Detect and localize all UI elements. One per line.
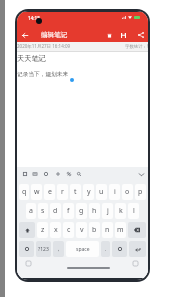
button[interactable]: Share (135, 29, 147, 41)
staticText: g (79, 206, 84, 216)
button[interactable]: b (89, 222, 100, 238)
button[interactable]: q (19, 184, 29, 200)
button[interactable]: e (44, 184, 55, 200)
button[interactable]: g (76, 203, 87, 219)
staticText: 天天笔记 (17, 54, 46, 63)
staticText: 2020年11月27日 16:14:09 (17, 43, 71, 49)
staticText: 字数统计：9 (125, 43, 148, 49)
button[interactable]: v (76, 222, 87, 238)
button[interactable]: y (83, 184, 94, 200)
button[interactable]: Save (117, 29, 129, 41)
staticText: q (22, 187, 27, 197)
button[interactable]: m (115, 222, 126, 238)
staticText: u (99, 187, 104, 197)
staticText: 记录当下，规划未来 (17, 71, 69, 78)
staticText: o (125, 187, 130, 197)
button[interactable]: Tool 2 (31, 170, 39, 178)
staticText: k (119, 206, 123, 216)
staticText: b (92, 225, 97, 235)
staticText: i (114, 187, 116, 197)
staticText: x (54, 225, 58, 235)
button[interactable]: h (89, 203, 100, 219)
staticText: f (67, 206, 70, 216)
staticText: c (67, 225, 71, 235)
staticText: ?123 (38, 246, 49, 253)
button[interactable]: w (31, 184, 42, 200)
button[interactable]: Backspace (128, 222, 146, 238)
button[interactable]: l (128, 203, 139, 219)
button[interactable]: f (63, 203, 74, 219)
button[interactable]: Enter (129, 241, 146, 257)
staticText: e (48, 187, 52, 197)
staticText: s (41, 206, 45, 216)
button[interactable]: j (102, 203, 113, 219)
button[interactable]: Comma (53, 241, 64, 257)
staticText: t (74, 187, 77, 197)
button[interactable]: a (26, 203, 36, 219)
button[interactable]: c (63, 222, 74, 238)
staticText: p (138, 187, 143, 197)
button[interactable]: Tool 5 (65, 170, 73, 178)
staticText: y (87, 187, 91, 197)
staticText: d (53, 206, 58, 216)
button[interactable]: z (37, 222, 48, 238)
button[interactable]: Period (101, 241, 110, 257)
staticText: 14:15 (28, 15, 40, 21)
staticText: m (117, 225, 124, 235)
button[interactable]: Symbols (36, 241, 51, 257)
staticText: v (80, 225, 84, 235)
button[interactable]: Settings (132, 260, 139, 267)
button[interactable]: s (38, 203, 48, 219)
button[interactable]: Tool 4 (54, 170, 62, 178)
button[interactable]: r (57, 184, 68, 200)
staticText: r (61, 187, 64, 197)
staticText: n (105, 225, 110, 235)
button[interactable]: Tool 3 (42, 170, 50, 178)
button[interactable]: Back (19, 29, 31, 41)
button[interactable]: u (96, 184, 107, 200)
button[interactable]: o (122, 184, 133, 200)
button[interactable]: Emoji (19, 241, 34, 257)
staticText: , (58, 246, 60, 253)
staticText: . (105, 246, 107, 253)
button[interactable]: n (102, 222, 113, 238)
button[interactable]: k (115, 203, 126, 219)
button[interactable]: i (109, 184, 120, 200)
button[interactable]: Tool 1 (21, 170, 29, 178)
staticText: h (92, 206, 97, 216)
button[interactable]: Hide keyboard (137, 170, 145, 178)
staticText: z (41, 225, 45, 235)
staticText: space (76, 246, 90, 253)
button[interactable]: Language (112, 241, 127, 257)
button[interactable]: Shift (19, 222, 35, 238)
button[interactable]: d (50, 203, 61, 219)
staticText: 编辑笔记 (41, 31, 68, 39)
staticText: j (107, 206, 109, 216)
button[interactable]: p (135, 184, 146, 200)
button[interactable]: Keyboard switch (25, 260, 32, 267)
button[interactable]: Delete (103, 29, 115, 41)
button[interactable]: x (50, 222, 61, 238)
button[interactable]: space (66, 241, 99, 257)
button[interactable]: t (70, 184, 81, 200)
staticText: w (34, 187, 40, 197)
button[interactable]: Tool 6 (75, 170, 83, 178)
staticText: l (133, 206, 135, 216)
staticText: a (29, 206, 33, 216)
